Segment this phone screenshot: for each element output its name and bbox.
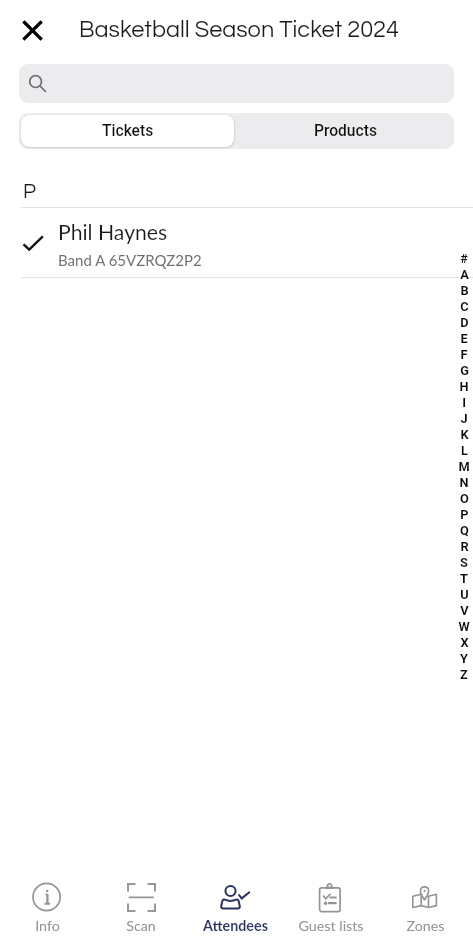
staticText: T: [460, 571, 468, 586]
staticText: P: [460, 507, 469, 522]
staticText: Tickets: [102, 122, 154, 140]
staticText: R: [460, 539, 469, 554]
staticText: Phil Haynes: [58, 219, 168, 244]
staticText: Scan: [126, 917, 156, 934]
staticText: C: [460, 299, 469, 314]
staticText: B: [460, 283, 469, 298]
staticText: Band A 65VZRQZ2P2: [58, 251, 202, 269]
staticText: #: [460, 251, 468, 266]
button[interactable]: R: [456, 538, 472, 554]
button[interactable]: Info: [0, 875, 94, 951]
button[interactable]: Attendees: [188, 875, 283, 951]
button[interactable]: Zones: [378, 875, 473, 951]
staticText: P: [23, 181, 36, 202]
staticText: J: [460, 411, 468, 426]
button[interactable]: Products: [236, 113, 454, 149]
staticText: F: [460, 347, 468, 362]
button[interactable]: Tickets: [21, 115, 234, 147]
staticText: Q: [460, 523, 469, 538]
button[interactable]: Y: [456, 650, 472, 666]
button[interactable]: Scan: [94, 875, 188, 951]
staticText: Products: [314, 122, 377, 140]
button[interactable]: #: [456, 250, 472, 266]
button[interactable]: Z: [456, 666, 472, 682]
staticText: I: [462, 395, 466, 410]
button[interactable]: D: [456, 314, 472, 330]
staticText: G: [460, 363, 469, 378]
staticText: H: [459, 379, 469, 394]
staticText: A: [460, 267, 469, 282]
staticText: Z: [460, 667, 468, 682]
staticText: D: [460, 315, 469, 330]
button[interactable]: J: [456, 410, 472, 426]
staticText: V: [460, 603, 469, 618]
staticText: O: [460, 491, 469, 506]
button[interactable]: Close: [14, 12, 51, 49]
staticText: Attendees: [203, 917, 268, 934]
button[interactable]: F: [456, 346, 472, 362]
button[interactable]: X: [456, 634, 472, 650]
button[interactable]: O: [456, 490, 472, 506]
staticText: U: [460, 587, 469, 602]
staticText: N: [459, 475, 469, 490]
button[interactable]: K: [456, 426, 472, 442]
button[interactable]: G: [456, 362, 472, 378]
staticText: L: [461, 443, 468, 458]
staticText: Guest lists: [298, 917, 364, 934]
staticText: M: [458, 459, 470, 474]
staticText: Zones: [406, 917, 445, 934]
button[interactable]: Phil Haynes: [0, 208, 473, 277]
staticText: W: [458, 619, 470, 634]
button[interactable]: V: [456, 602, 472, 618]
button[interactable]: S: [456, 554, 472, 570]
staticText: E: [460, 331, 468, 346]
button[interactable]: U: [456, 586, 472, 602]
button[interactable]: W: [456, 618, 472, 634]
button[interactable]: C: [456, 298, 472, 314]
button[interactable]: B: [456, 282, 472, 298]
button[interactable]: A: [456, 266, 472, 282]
staticText: S: [460, 555, 468, 570]
staticText: Y: [460, 651, 468, 666]
staticText: K: [460, 427, 469, 442]
staticText: Basketball Season Ticket 2024: [79, 18, 400, 42]
button[interactable]: E: [456, 330, 472, 346]
button[interactable]: T: [456, 570, 472, 586]
button[interactable]: L: [456, 442, 472, 458]
button[interactable]: M: [456, 458, 472, 474]
staticText: X: [460, 635, 469, 650]
button[interactable]: Search: [19, 64, 454, 103]
button[interactable]: P: [456, 506, 472, 522]
button[interactable]: Q: [456, 522, 472, 538]
button[interactable]: Guest lists: [283, 875, 378, 951]
button[interactable]: I: [456, 394, 472, 410]
staticText: Info: [35, 917, 60, 934]
button[interactable]: H: [456, 378, 472, 394]
button[interactable]: N: [456, 474, 472, 490]
